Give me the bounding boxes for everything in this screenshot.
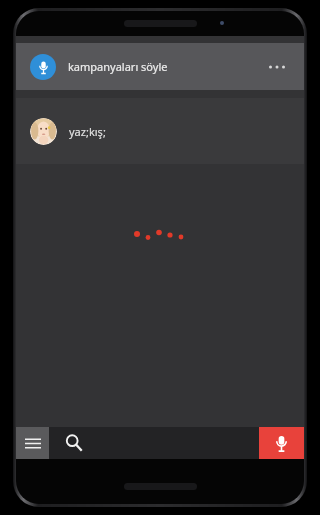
button[interactable]: Menu: [16, 427, 49, 459]
staticText: yaz;kış;: [69, 124, 106, 139]
button[interactable]: yaz;kış;: [16, 98, 304, 164]
button[interactable]: More options: [264, 54, 290, 80]
button[interactable]: kampanyaları söyle: [16, 43, 304, 90]
button[interactable]: Search: [49, 427, 99, 459]
button[interactable]: Voice search: [259, 427, 304, 459]
staticText: kampanyaları söyle: [68, 59, 168, 74]
